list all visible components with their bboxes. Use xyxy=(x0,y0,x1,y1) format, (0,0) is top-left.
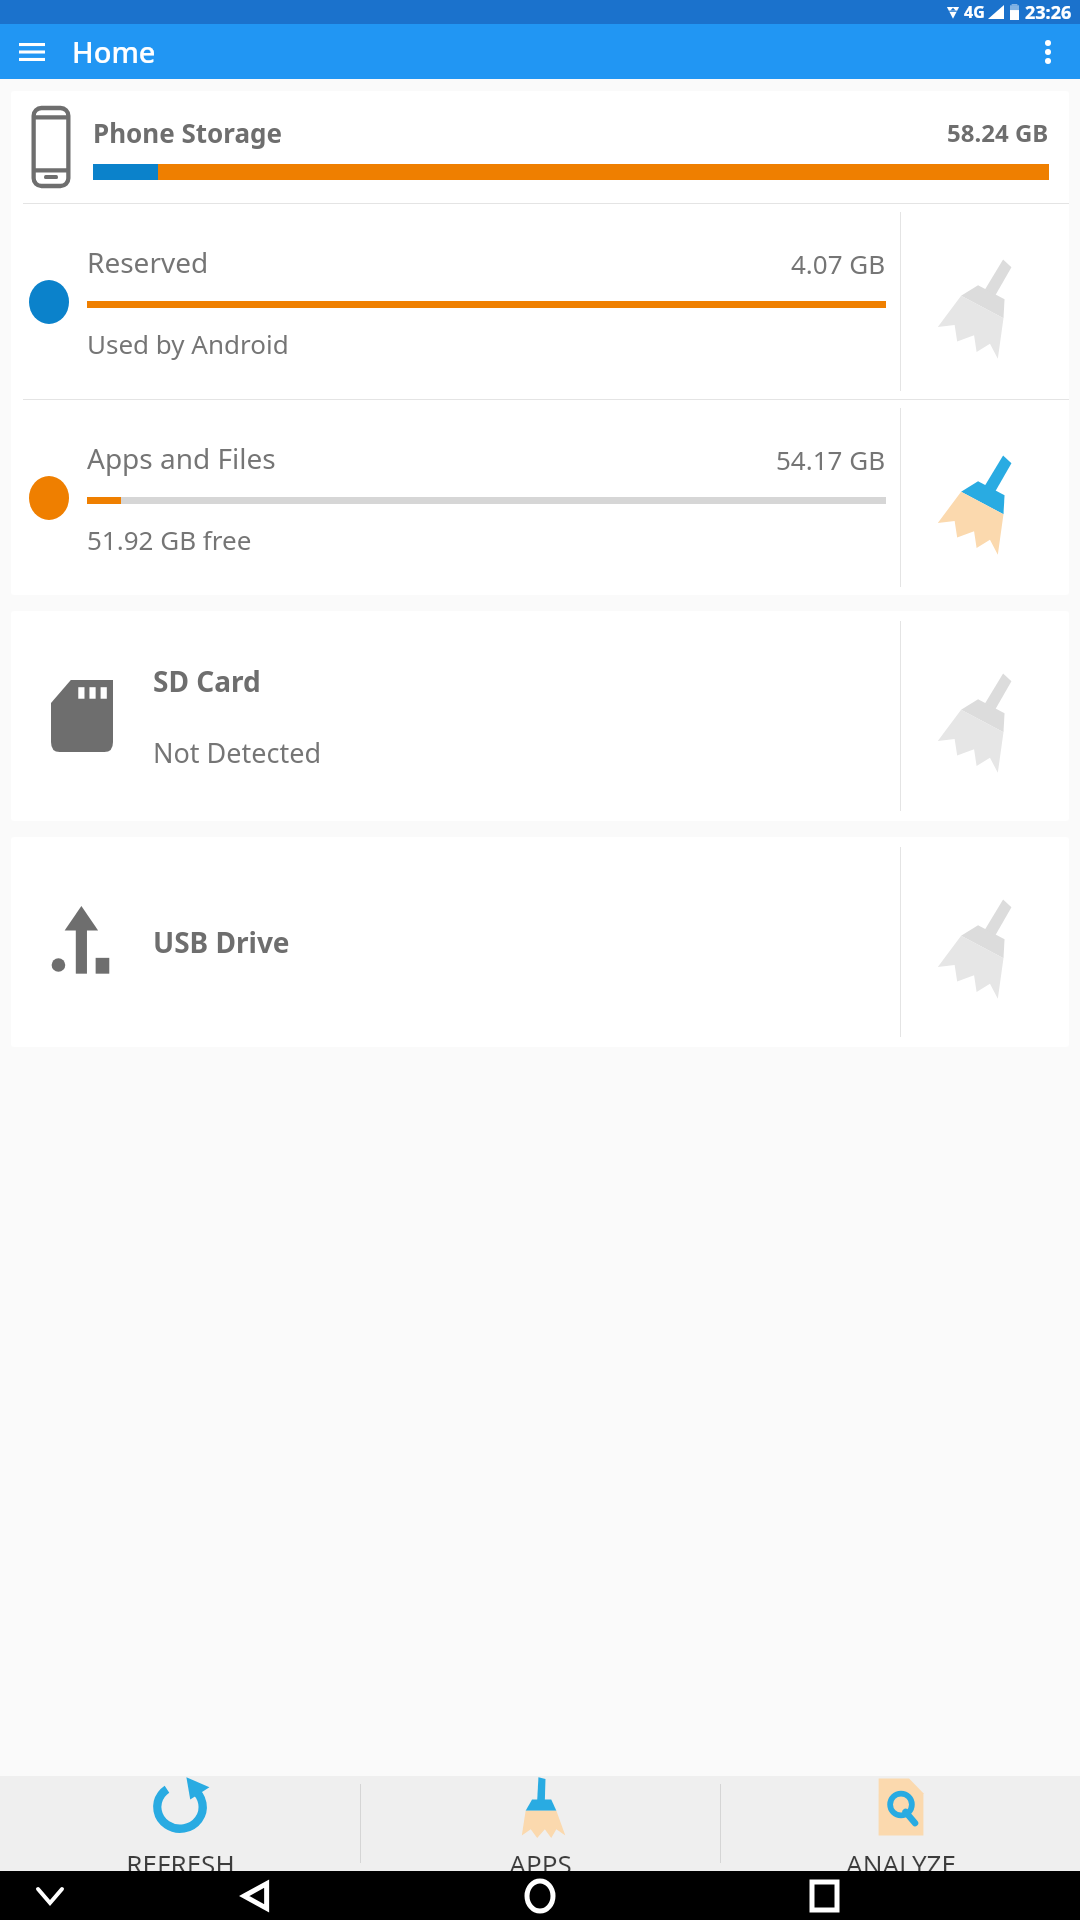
staticText: Used by Android xyxy=(87,326,289,361)
button[interactable]: Hide keyboard xyxy=(30,1876,70,1916)
button[interactable]: SD Card xyxy=(11,611,1069,821)
staticText: Reserved xyxy=(87,243,209,281)
button[interactable]: Apps and Files xyxy=(11,400,900,595)
button[interactable]: Clean apps and files xyxy=(901,400,1069,595)
button[interactable]: Reserved xyxy=(11,204,900,399)
button[interactable]: Back xyxy=(228,1871,284,1920)
staticText: USB Drive xyxy=(153,923,290,961)
staticText: REFRESH xyxy=(126,1846,235,1871)
staticText: ANALYZE xyxy=(846,1846,956,1871)
button[interactable]: APPS xyxy=(361,1776,720,1871)
staticText: Home xyxy=(72,32,156,71)
staticText: APPS xyxy=(509,1846,572,1871)
button[interactable]: REFRESH xyxy=(0,1776,360,1871)
staticText: Apps and Files xyxy=(87,439,276,477)
button[interactable]: Clean SD Card xyxy=(901,611,1069,821)
button[interactable]: Clean USB Drive xyxy=(901,837,1069,1047)
staticText: Not Detected xyxy=(153,734,322,771)
staticText: 4.07 GB xyxy=(791,246,886,281)
staticText: 4G xyxy=(964,1,985,23)
button[interactable]: Home xyxy=(512,1871,568,1920)
button[interactable]: More options xyxy=(1024,28,1072,76)
button[interactable]: ANALYZE xyxy=(721,1776,1080,1871)
staticText: 23:26 xyxy=(1025,0,1072,24)
button[interactable]: Open navigation menu xyxy=(8,28,56,76)
staticText: 51.92 GB free xyxy=(87,522,252,557)
button[interactable]: Phone Storage xyxy=(11,91,1069,595)
staticText: Phone Storage xyxy=(93,115,282,150)
button[interactable]: USB Drive xyxy=(11,837,1069,1047)
staticText: 54.17 GB xyxy=(776,442,886,477)
staticText: 58.24 GB xyxy=(947,116,1049,149)
staticText: SD Card xyxy=(153,662,261,700)
button[interactable]: Clean xyxy=(901,204,1069,399)
button[interactable]: Recent apps xyxy=(796,1871,852,1920)
